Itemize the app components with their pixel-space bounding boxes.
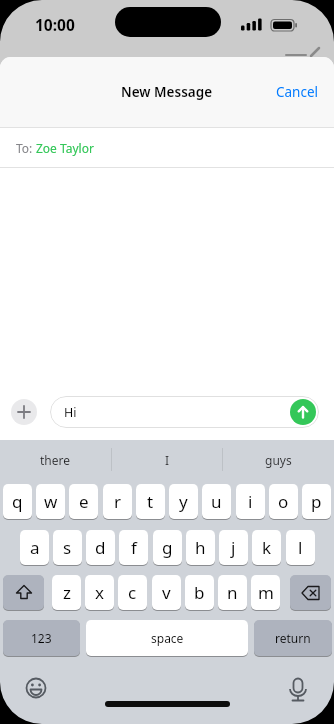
button[interactable]: c (118, 575, 147, 610)
button[interactable]: j (219, 530, 248, 565)
button[interactable]: l (286, 530, 315, 565)
staticText: a (30, 536, 40, 559)
button[interactable]: Cancel (276, 83, 319, 101)
button[interactable]: Hi (50, 396, 319, 428)
staticText: t (147, 490, 154, 513)
button[interactable]: k (252, 530, 281, 565)
staticText: r (114, 490, 122, 513)
button[interactable]: m (251, 575, 280, 610)
staticText: w (44, 490, 58, 513)
button[interactable]: guys (223, 444, 334, 476)
button[interactable]: n (218, 575, 247, 610)
staticText: k (262, 536, 272, 559)
button[interactable]: p (302, 484, 331, 519)
button[interactable]: space (86, 620, 248, 656)
button[interactable]: o (269, 484, 298, 519)
staticText: l (298, 536, 303, 559)
staticText: z (63, 581, 71, 604)
staticText: space (151, 630, 184, 646)
staticText: f (131, 536, 137, 559)
staticText: I (165, 452, 170, 468)
staticText: Zoe Taylor (36, 140, 94, 156)
button[interactable]: a (20, 530, 49, 565)
button[interactable]: z (52, 575, 81, 610)
staticText: c (128, 581, 137, 604)
button[interactable]: s (53, 530, 82, 565)
staticText: 123 (31, 630, 52, 646)
button[interactable]: To: (0, 128, 334, 167)
button[interactable] (283, 675, 313, 705)
staticText: v (162, 581, 171, 604)
staticText: Cancel (276, 83, 319, 101)
button[interactable]: t (136, 484, 165, 519)
button[interactable]: q (3, 484, 32, 519)
button[interactable]: f (119, 530, 148, 565)
button[interactable]: x (85, 575, 114, 610)
button[interactable] (290, 399, 316, 425)
staticText: j (231, 536, 236, 559)
staticText: h (195, 536, 206, 559)
staticText: e (79, 490, 89, 513)
button[interactable]: y (169, 484, 198, 519)
button[interactable] (3, 575, 44, 610)
button[interactable]: d (86, 530, 115, 565)
staticText: return (275, 630, 311, 646)
button[interactable]: return (254, 620, 332, 656)
staticText: o (278, 490, 289, 513)
staticText: y (179, 490, 188, 513)
staticText: s (63, 536, 72, 559)
button[interactable] (11, 399, 37, 425)
button[interactable]: 123 (3, 620, 80, 656)
button[interactable]: g (153, 530, 182, 565)
staticText: m (258, 581, 274, 604)
staticText: i (248, 490, 253, 513)
button[interactable] (21, 673, 51, 703)
button[interactable]: I (111, 444, 223, 476)
button[interactable]: i (236, 484, 265, 519)
staticText: q (12, 490, 23, 513)
staticText: u (211, 490, 222, 513)
staticText: To: (16, 140, 36, 156)
staticText: 10:00 (35, 14, 75, 34)
button[interactable]: h (186, 530, 215, 565)
staticText: there (40, 452, 71, 468)
staticText: Hi (64, 404, 77, 421)
button[interactable]: r (103, 484, 132, 519)
staticText: p (311, 490, 322, 513)
staticText: guys (265, 452, 292, 468)
staticText: b (194, 581, 205, 604)
button[interactable]: e (69, 484, 98, 519)
button[interactable]: there (0, 444, 111, 476)
button[interactable]: u (202, 484, 231, 519)
staticText: g (162, 536, 173, 559)
staticText: x (95, 581, 104, 604)
staticText: n (227, 581, 238, 604)
staticText: New Message (121, 83, 213, 101)
staticText: d (95, 536, 106, 559)
button[interactable]: w (36, 484, 65, 519)
button[interactable]: v (152, 575, 181, 610)
button[interactable] (290, 575, 331, 610)
button[interactable]: b (185, 575, 214, 610)
